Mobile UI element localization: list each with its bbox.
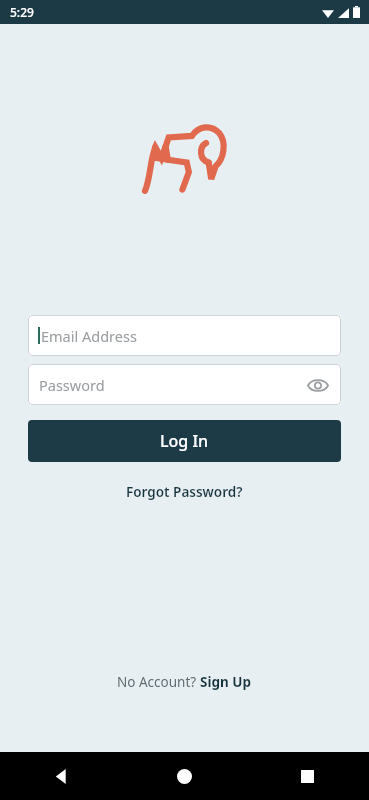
staticText: Password (39, 375, 305, 395)
button[interactable]: Recent apps (246, 752, 369, 800)
staticText: Log In (160, 430, 209, 452)
button[interactable]: Log In (28, 420, 341, 462)
staticText: Email Address (41, 326, 137, 346)
button[interactable]: Email Address (28, 315, 341, 356)
other: App logo (142, 123, 228, 193)
button[interactable]: Show password (305, 372, 331, 398)
button[interactable]: Forgot Password? (116, 479, 253, 505)
button[interactable]: No Account? (0, 669, 369, 695)
staticText: 5:29 (10, 4, 34, 20)
staticText: No Account? (117, 673, 200, 691)
button[interactable]: Password (28, 364, 341, 405)
staticText: Forgot Password? (126, 483, 243, 501)
button[interactable]: Back (0, 752, 123, 800)
button[interactable]: Home (123, 752, 246, 800)
staticText: Sign Up (200, 673, 252, 691)
